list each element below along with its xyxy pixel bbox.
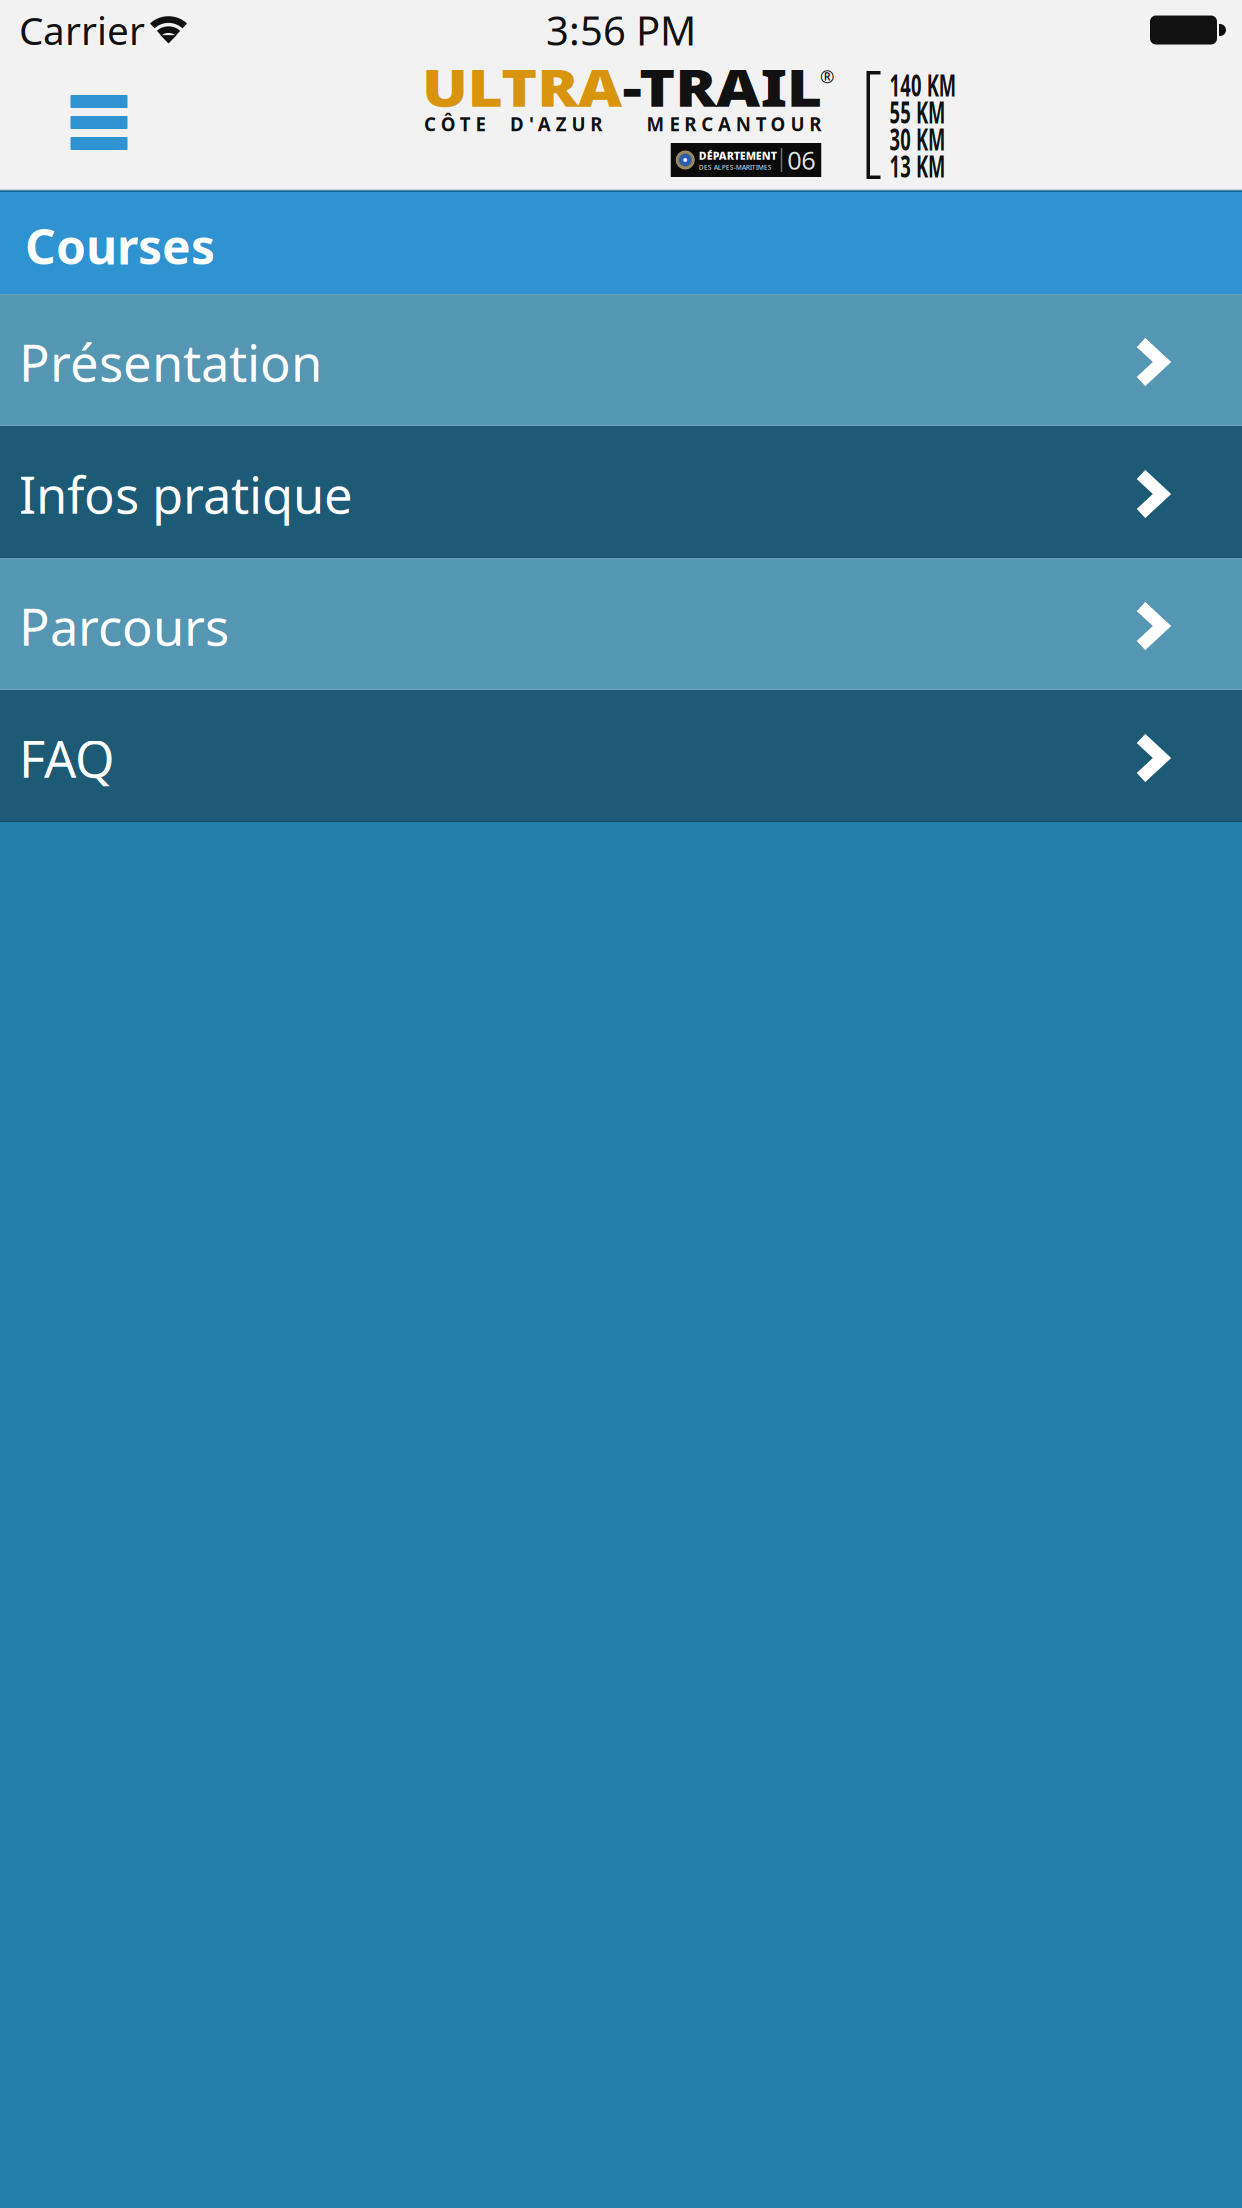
staticText: -TRAIL xyxy=(589,53,755,121)
staticText: 06 xyxy=(787,143,815,177)
staticText: Infos pratique xyxy=(19,460,353,528)
button[interactable]: FAQ xyxy=(0,690,1242,822)
staticText: ULTRA xyxy=(422,53,589,121)
staticText: FAQ xyxy=(19,724,115,792)
button[interactable]: Infos pratique xyxy=(0,426,1242,558)
staticText: DÉPARTEMENT xyxy=(699,148,777,163)
staticText: ® xyxy=(820,65,834,88)
staticText: 55 KM xyxy=(889,91,982,132)
staticText: DES ALPES-MARITIMES xyxy=(699,163,772,172)
staticText: Parcours xyxy=(19,592,229,660)
staticText: 30 KM xyxy=(889,118,982,159)
button[interactable]: Présentation xyxy=(0,294,1242,426)
staticText: 13 KM xyxy=(889,145,982,186)
button[interactable]: Menu xyxy=(47,72,151,172)
staticText: Présentation xyxy=(19,328,322,396)
staticText: 140 KM xyxy=(889,64,1000,105)
staticText: Courses xyxy=(25,214,215,278)
button[interactable]: Parcours xyxy=(0,558,1242,690)
staticText: Carrier xyxy=(19,4,145,56)
staticText: CÔTE D'AZUR MERCANTOUR xyxy=(424,112,821,136)
staticText: 3:56 PM xyxy=(546,3,696,56)
